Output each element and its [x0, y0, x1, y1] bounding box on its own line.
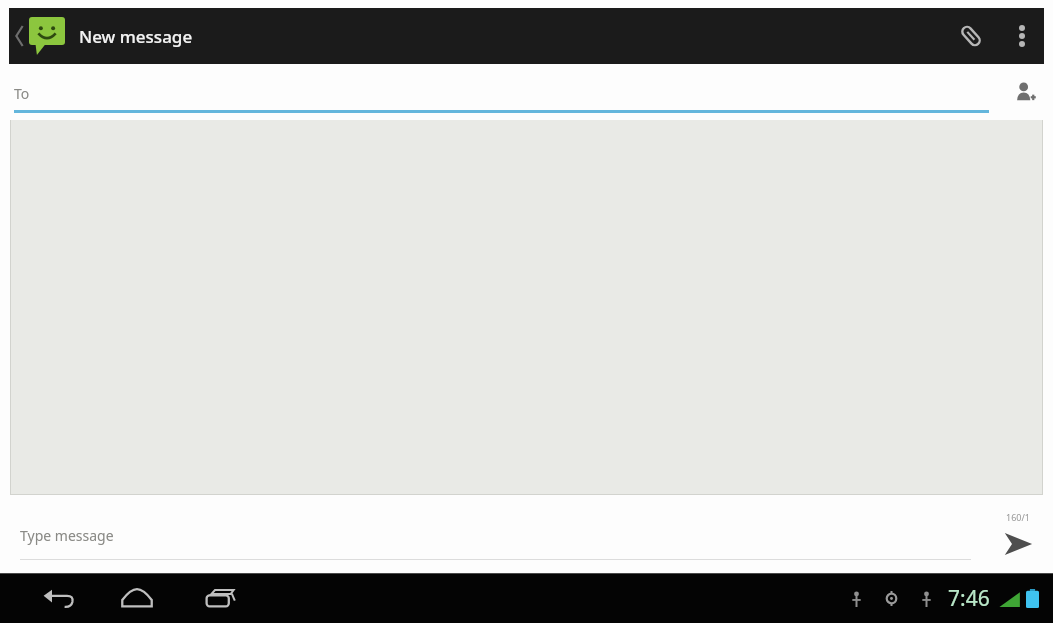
button[interactable]: Home	[94, 575, 180, 621]
staticText: To	[14, 84, 30, 103]
button[interactable]: Add recipient	[997, 64, 1053, 120]
staticText: 160/1	[1006, 511, 1030, 523]
button[interactable]: Back	[22, 575, 94, 621]
staticText: New message	[79, 25, 193, 48]
button[interactable]: To	[0, 64, 997, 120]
button[interactable]: Type message	[0, 495, 983, 573]
staticText: Type message	[20, 526, 114, 545]
button[interactable]: More options	[1000, 8, 1044, 64]
staticText: 7:46	[948, 584, 990, 613]
button[interactable]: Navigate up	[9, 8, 69, 64]
button[interactable]: Send	[983, 495, 1053, 573]
button[interactable]: Recent apps	[180, 575, 262, 621]
button[interactable]: Attach	[942, 8, 1000, 64]
